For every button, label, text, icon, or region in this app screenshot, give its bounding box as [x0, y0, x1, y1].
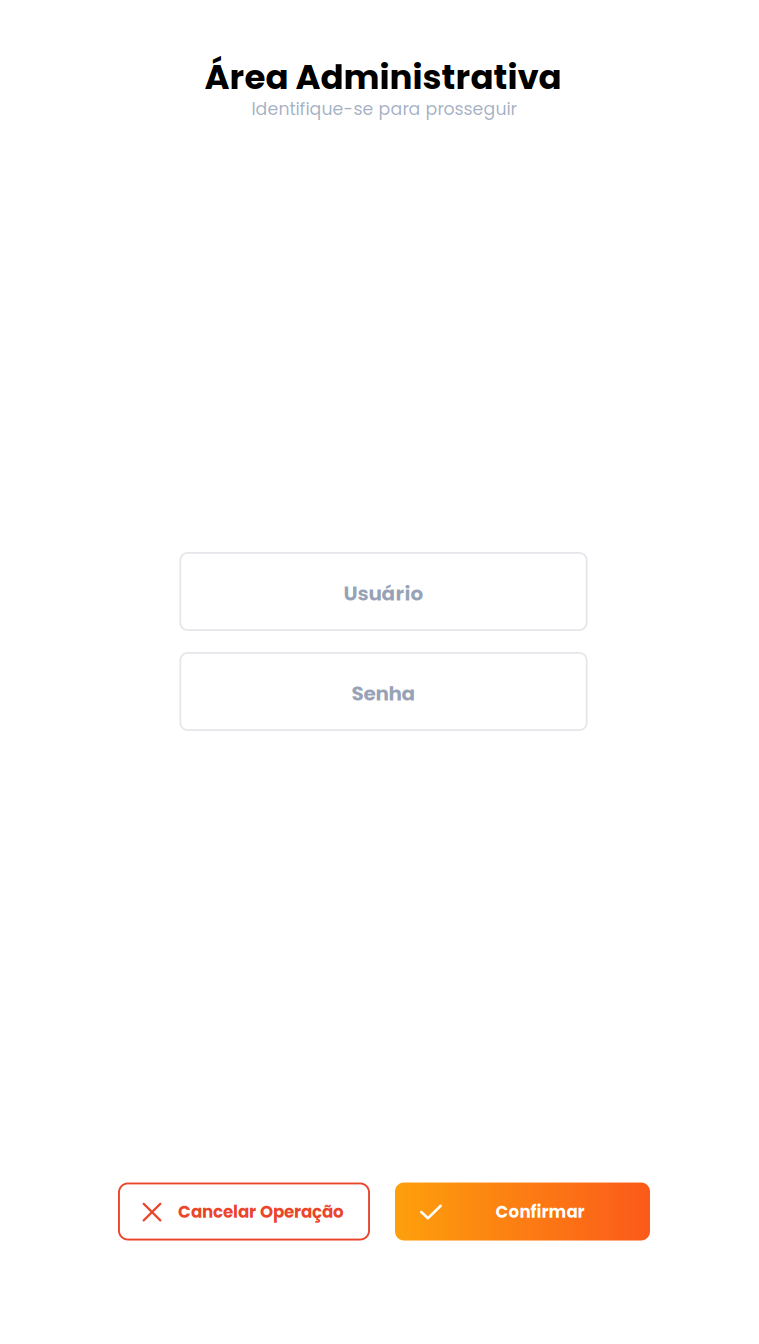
staticText: Usuário: [343, 579, 423, 607]
staticText: Área Administrativa: [204, 53, 561, 101]
button[interactable]: Usuário: [179, 552, 587, 631]
button[interactable]: Confirmar: [395, 1182, 650, 1240]
staticText: Senha: [351, 679, 415, 707]
staticText: Identifique-se para prosseguir: [251, 97, 516, 121]
button[interactable]: Senha: [179, 652, 587, 731]
staticText: Cancelar Operação: [178, 1200, 344, 1224]
button[interactable]: Cancelar Operação: [118, 1182, 370, 1240]
staticText: Confirmar: [495, 1200, 584, 1224]
